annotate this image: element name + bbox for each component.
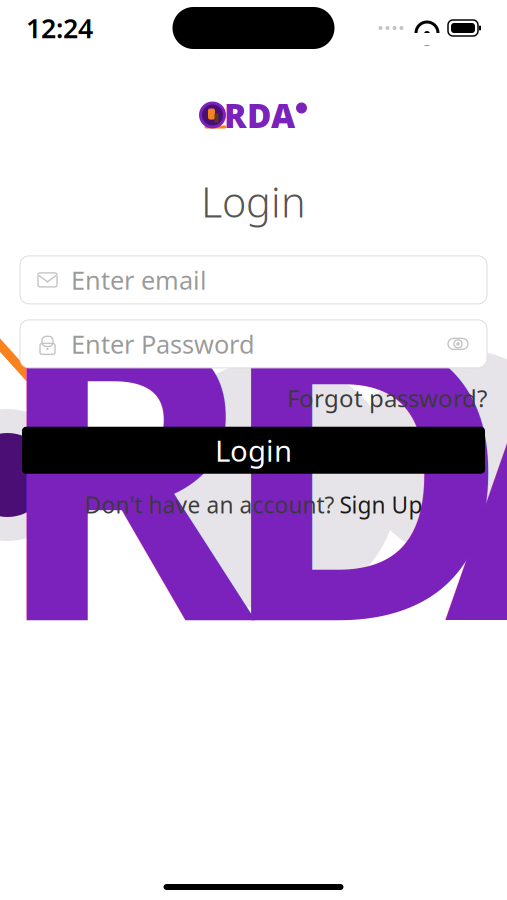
staticText: RDA (224, 93, 295, 137)
button[interactable]: Forgot password? (287, 382, 487, 414)
staticText: Login (201, 174, 306, 229)
button[interactable]: Enter Password (20, 320, 487, 368)
staticText: Sign Up (339, 490, 422, 520)
staticText: Enter email (71, 263, 207, 297)
staticText: R (0, 199, 254, 731)
staticText: Don't have an account? (84, 490, 334, 520)
button[interactable]: Enter email (20, 256, 487, 304)
staticText: 12:24 (26, 10, 93, 46)
staticText: Enter Password (71, 327, 255, 361)
staticText: Login (215, 431, 292, 470)
staticText: Forgot password? (287, 382, 487, 414)
staticText: D (217, 199, 507, 731)
button[interactable]: Login (22, 427, 485, 474)
staticText: R (0, 199, 254, 731)
staticText: A (445, 199, 507, 731)
button[interactable]: Don't have an account? (84, 490, 422, 520)
